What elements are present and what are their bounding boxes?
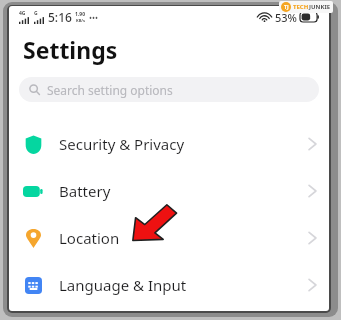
staticText: 4G — [19, 10, 26, 17]
button[interactable]: Security & Privacy — [9, 120, 329, 167]
staticText: 5:16 — [48, 9, 72, 25]
staticText: ••• — [89, 12, 99, 23]
button[interactable]: Battery — [9, 167, 329, 214]
staticText: Battery — [59, 181, 111, 201]
staticText: JUNKIE — [309, 3, 331, 11]
staticText: Settings — [23, 34, 118, 65]
staticText: G — [34, 10, 38, 17]
staticText: Location — [59, 228, 120, 248]
staticText: 1.90 — [75, 11, 85, 18]
staticText: KB/s — [76, 18, 85, 23]
button[interactable]: Location — [9, 214, 329, 261]
staticText: TJ — [284, 4, 289, 11]
staticText: Language & Input — [59, 275, 187, 295]
button[interactable]: Language & Input — [9, 261, 329, 308]
staticText: TECH — [293, 3, 309, 11]
staticText: Security & Privacy — [59, 134, 185, 154]
staticText: Search setting options — [47, 82, 173, 98]
staticText: 53% — [275, 10, 297, 25]
button[interactable]: Search setting options — [19, 77, 319, 102]
